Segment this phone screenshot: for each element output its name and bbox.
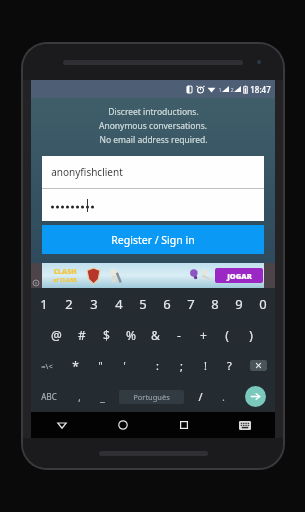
staticText: :	[156, 358, 159, 373]
button[interactable]: 9	[227, 288, 251, 319]
staticText: 8	[211, 295, 219, 313]
button[interactable]: ?	[217, 350, 241, 381]
button[interactable]: ABC	[31, 381, 67, 412]
button[interactable]: ,	[67, 381, 91, 412]
staticText: Anonymous conversations.	[99, 120, 207, 132]
staticText: Português	[133, 392, 170, 402]
button[interactable]: (	[215, 319, 239, 350]
button[interactable]: :	[145, 350, 169, 381]
button[interactable]: 3	[81, 288, 106, 319]
staticText: 3	[90, 295, 98, 313]
button[interactable]: ;	[169, 350, 193, 381]
button[interactable]: $	[94, 319, 119, 350]
button[interactable]: anonyfishclient	[42, 156, 264, 188]
staticText: 4	[115, 295, 123, 313]
staticText: JOGAR	[227, 271, 252, 281]
button[interactable]: /	[189, 381, 212, 412]
button[interactable]: +	[191, 319, 215, 350]
staticText: -	[177, 327, 181, 343]
button[interactable]: Home	[92, 412, 153, 438]
staticText: ;	[180, 358, 183, 373]
staticText: &	[151, 327, 160, 343]
button[interactable]: @	[44, 319, 69, 350]
staticText: Discreet introductions.	[108, 106, 199, 118]
button[interactable]: Enter	[235, 381, 275, 412]
staticText: #	[78, 327, 86, 343]
staticText: (	[225, 327, 229, 343]
staticText: .	[222, 389, 225, 404]
staticText: !	[204, 358, 207, 373]
button[interactable]: %	[119, 319, 143, 350]
button[interactable]: _	[91, 381, 114, 412]
button[interactable]: 1	[31, 288, 56, 319]
staticText: "	[98, 359, 103, 373]
button[interactable]: 8	[203, 288, 227, 319]
button[interactable]: 6	[155, 288, 179, 319]
staticText: 7	[187, 295, 195, 313]
button[interactable]: "	[88, 350, 112, 381]
staticText: '	[123, 359, 126, 373]
staticText: =\<	[41, 361, 53, 371]
button[interactable]: -	[167, 319, 191, 350]
button[interactable]: Português	[114, 381, 189, 412]
button[interactable]: 2	[56, 288, 81, 319]
button[interactable]: )	[239, 319, 263, 350]
staticText: $	[103, 327, 110, 343]
staticText: +	[200, 327, 207, 343]
button[interactable]: #	[69, 319, 94, 350]
staticText: _	[100, 389, 105, 404]
staticText: %	[126, 327, 136, 343]
button[interactable]: JOGAR	[215, 268, 263, 283]
button[interactable]: 4	[106, 288, 131, 319]
button[interactable]: Register / Sign in	[42, 225, 264, 254]
staticText: 6	[163, 295, 171, 313]
staticText: )	[249, 327, 253, 343]
staticText: 1	[40, 295, 48, 313]
button[interactable]: .	[212, 381, 235, 412]
staticText: 2	[230, 86, 234, 93]
staticText: *	[72, 358, 79, 374]
button[interactable]: *	[63, 350, 88, 381]
button[interactable]: !	[193, 350, 217, 381]
button[interactable]: '	[112, 350, 136, 381]
button[interactable]: 0	[251, 288, 275, 319]
button[interactable]: Switch keyboard	[214, 412, 275, 438]
staticText: Register / Sign in	[111, 233, 195, 247]
staticText: 18:47	[250, 84, 271, 95]
button[interactable]: Recents	[153, 412, 214, 438]
button[interactable]: &	[143, 319, 167, 350]
staticText: ,	[78, 389, 81, 404]
button[interactable]: 5	[131, 288, 155, 319]
staticText: of CLANS	[53, 277, 77, 284]
button[interactable]: Advertisement: Clash of Clans	[31, 263, 275, 288]
staticText: @	[51, 327, 62, 343]
button[interactable]: =\<	[31, 350, 63, 381]
button[interactable]: 7	[179, 288, 203, 319]
button[interactable]: Back	[31, 412, 92, 438]
staticText: 2	[65, 295, 73, 313]
staticText: /	[198, 389, 203, 404]
staticText: ?	[227, 358, 232, 373]
button[interactable]	[42, 189, 264, 221]
staticText: 9	[235, 295, 243, 313]
staticText: ABC	[41, 391, 57, 402]
staticText: 1	[218, 86, 222, 93]
staticText: No email address required.	[99, 134, 208, 146]
button[interactable]: Delete	[241, 350, 275, 381]
staticText: 5	[139, 295, 147, 313]
staticText: CLASH	[53, 267, 77, 277]
staticText: 0	[259, 295, 267, 313]
staticText: anonyfishclient	[51, 165, 123, 179]
